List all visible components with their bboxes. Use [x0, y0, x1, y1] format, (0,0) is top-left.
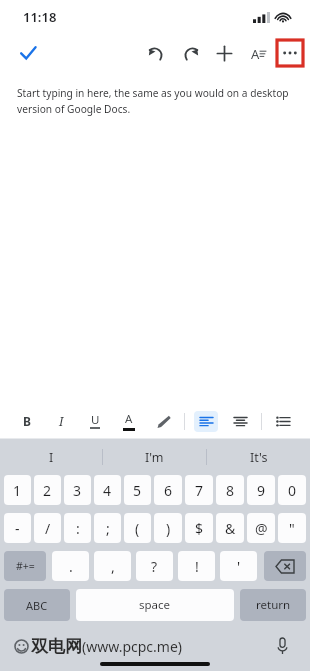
- staticText: 双电网: [31, 636, 82, 657]
- button[interactable]: space: [76, 589, 234, 621]
- staticText: ;: [106, 519, 110, 538]
- staticText: 4: [103, 481, 112, 500]
- button[interactable]: Underline: [78, 408, 112, 434]
- staticText: It's: [250, 449, 268, 466]
- staticText: 6: [164, 481, 173, 500]
- staticText: 11:18: [23, 8, 57, 26]
- button[interactable]: Emoji: [14, 639, 29, 654]
- staticText: ABC: [26, 598, 48, 613]
- button[interactable]: More options: [276, 39, 304, 67]
- staticText: 2: [43, 481, 52, 500]
- button[interactable]: @: [247, 513, 275, 543]
- button[interactable]: Italic: [44, 408, 78, 434]
- staticText: I'm: [145, 449, 164, 466]
- staticText: ': [237, 557, 241, 576]
- button[interactable]: .: [52, 551, 89, 581]
- button[interactable]: Bold: [10, 408, 44, 434]
- button[interactable]: #+=: [4, 551, 46, 581]
- button[interactable]: Highlight: [146, 408, 181, 434]
- button[interactable]: Voice input: [272, 636, 292, 656]
- staticText: &: [225, 519, 236, 538]
- button[interactable]: $: [185, 513, 213, 543]
- button[interactable]: Align left: [188, 410, 223, 432]
- staticText: 1: [13, 481, 22, 500]
- staticText: -: [15, 519, 20, 538]
- button[interactable]: 0: [278, 475, 306, 505]
- staticText: I: [59, 413, 64, 429]
- button[interactable]: ABC: [4, 589, 70, 621]
- button[interactable]: 3: [64, 475, 91, 505]
- button[interactable]: 7: [185, 475, 213, 505]
- button[interactable]: /: [34, 513, 61, 543]
- button[interactable]: &: [216, 513, 244, 543]
- staticText: (: [135, 519, 140, 538]
- staticText: ": [289, 519, 295, 538]
- button[interactable]: 1: [4, 475, 31, 505]
- button[interactable]: ): [154, 513, 182, 543]
- staticText: .: [69, 557, 73, 576]
- button[interactable]: List: [265, 410, 300, 432]
- staticText: @: [255, 519, 268, 538]
- staticText: 5: [133, 481, 142, 500]
- staticText: $: [195, 519, 204, 538]
- button[interactable]: Undo: [142, 39, 170, 67]
- staticText: 9: [257, 481, 266, 500]
- button[interactable]: ": [278, 513, 306, 543]
- staticText: #+=: [16, 559, 35, 573]
- button[interactable]: 8: [216, 475, 244, 505]
- button[interactable]: 4: [94, 475, 121, 505]
- button[interactable]: (: [124, 513, 151, 543]
- staticText: A: [251, 45, 260, 62]
- staticText: ): [166, 519, 171, 538]
- button[interactable]: !: [178, 551, 215, 581]
- button[interactable]: Align center: [223, 410, 258, 432]
- staticText: I: [49, 449, 54, 466]
- button[interactable]: Insert: [210, 39, 238, 67]
- staticText: 0: [288, 481, 297, 500]
- button[interactable]: ?: [136, 551, 173, 581]
- button[interactable]: 5: [124, 475, 151, 505]
- button[interactable]: Formatting: [244, 39, 272, 67]
- button[interactable]: ': [220, 551, 257, 581]
- button[interactable]: Redo: [176, 39, 204, 67]
- button[interactable]: 2: [34, 475, 61, 505]
- button[interactable]: Text color: [112, 408, 146, 434]
- button[interactable]: 9: [247, 475, 275, 505]
- button[interactable]: :: [64, 513, 91, 543]
- staticText: 3: [73, 481, 82, 500]
- staticText: A: [125, 411, 133, 427]
- staticText: /: [45, 519, 51, 538]
- staticText: (www.pcpc.me): [82, 637, 183, 656]
- button[interactable]: I'm: [103, 439, 206, 475]
- staticText: !: [195, 557, 199, 576]
- staticText: Start typing in here, the same as you wo…: [17, 86, 290, 116]
- button[interactable]: 6: [154, 475, 182, 505]
- staticText: :: [76, 519, 80, 538]
- button[interactable]: -: [4, 513, 31, 543]
- staticText: B: [23, 413, 31, 429]
- button[interactable]: Backspace: [264, 551, 306, 581]
- staticText: 7: [195, 481, 204, 500]
- staticText: ,: [111, 557, 115, 576]
- staticText: ?: [151, 557, 158, 576]
- button[interactable]: Done: [12, 37, 44, 69]
- button[interactable]: ,: [94, 551, 131, 581]
- staticText: return: [256, 597, 291, 613]
- staticText: space: [139, 597, 171, 613]
- button[interactable]: return: [240, 589, 306, 621]
- button[interactable]: I: [0, 439, 102, 475]
- staticText: U: [91, 412, 100, 428]
- button[interactable]: ;: [94, 513, 121, 543]
- staticText: 8: [226, 481, 235, 500]
- button[interactable]: It's: [207, 439, 310, 475]
